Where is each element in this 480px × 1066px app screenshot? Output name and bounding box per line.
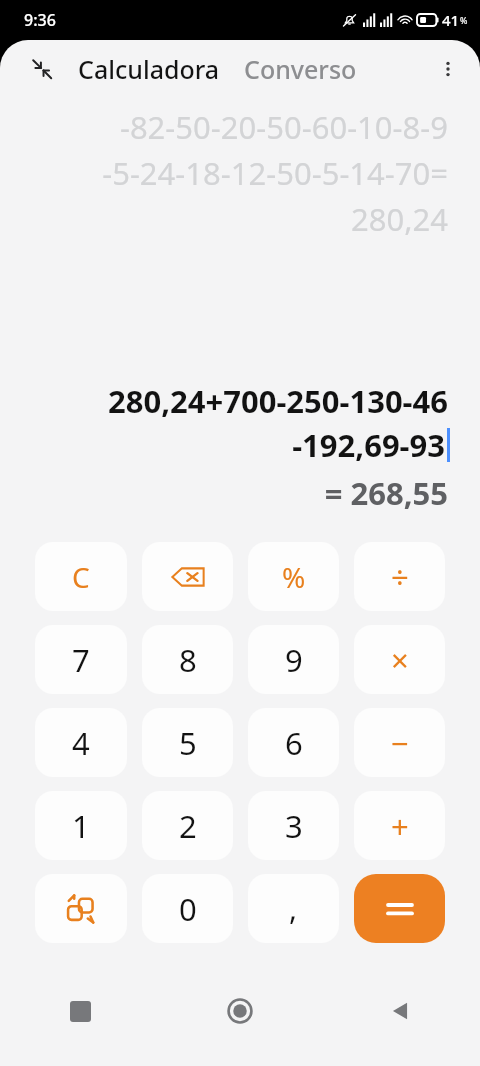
button[interactable]: Home: [160, 981, 320, 1041]
staticText: %: [460, 14, 468, 26]
staticText: +: [391, 805, 409, 847]
button[interactable]: Scientific mode: [35, 874, 127, 943]
button[interactable]: C: [35, 542, 127, 611]
staticText: 280,24+700-250-130-46: [107, 380, 448, 422]
button[interactable]: −: [354, 708, 445, 777]
button[interactable]: More options: [426, 47, 470, 91]
button[interactable]: +: [354, 791, 445, 860]
button[interactable]: 9: [248, 625, 339, 694]
button[interactable]: 2: [142, 791, 233, 860]
staticText: ,: [289, 888, 298, 929]
button[interactable]: Calculadora: [74, 48, 224, 90]
staticText: ×: [391, 639, 409, 681]
button[interactable]: Collapse: [22, 49, 62, 89]
button[interactable]: ×: [354, 625, 445, 694]
button[interactable]: Backspace: [142, 542, 233, 611]
button[interactable]: %: [248, 542, 339, 611]
staticText: 9:36: [24, 9, 56, 31]
staticText: %: [282, 558, 306, 596]
staticText: −: [391, 722, 409, 764]
button[interactable]: 6: [248, 708, 339, 777]
button[interactable]: 8: [142, 625, 233, 694]
button[interactable]: [354, 874, 445, 943]
staticText: 2: [179, 805, 197, 847]
button[interactable]: 1: [35, 791, 127, 860]
staticText: C: [72, 558, 90, 596]
staticText: 0: [179, 888, 197, 930]
button[interactable]: 3: [248, 791, 339, 860]
staticText: ÷: [391, 556, 409, 598]
staticText: -192,69-93: [292, 424, 445, 466]
button[interactable]: 4: [35, 708, 127, 777]
staticText: Calculadora: [78, 52, 220, 86]
staticText: 5: [179, 722, 197, 764]
staticText: -5-24-18-12-50-5-14-70=: [102, 152, 448, 194]
button[interactable]: Converso: [240, 48, 361, 90]
staticText: Converso: [244, 52, 357, 86]
staticText: 8: [179, 639, 197, 681]
staticText: 7: [72, 639, 90, 681]
button[interactable]: 0: [142, 874, 233, 943]
staticText: 9: [285, 639, 303, 681]
staticText: 3: [285, 805, 303, 847]
button[interactable]: 5: [142, 708, 233, 777]
button[interactable]: ÷: [354, 542, 445, 611]
staticText: 1: [72, 805, 90, 847]
button[interactable]: ,: [248, 874, 339, 943]
button[interactable]: 7: [35, 625, 127, 694]
staticText: 41: [442, 10, 460, 30]
staticText: 280,24: [351, 198, 448, 240]
staticText: = 268,55: [324, 472, 448, 514]
staticText: 6: [285, 722, 303, 764]
button[interactable]: Recent apps: [0, 981, 160, 1041]
staticText: -82-50-20-50-60-10-8-9: [119, 106, 448, 148]
staticText: 4: [72, 722, 90, 764]
button[interactable]: Back: [320, 981, 480, 1041]
